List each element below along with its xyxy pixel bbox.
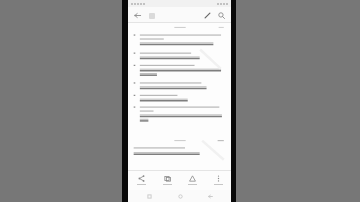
button[interactable]: Gallery — [155, 170, 179, 190]
button[interactable]: Open in Acrobat — [180, 170, 204, 190]
button[interactable]: Edit — [201, 9, 214, 22]
button[interactable]: Home — [170, 190, 190, 202]
button[interactable]: Share — [129, 170, 153, 190]
button[interactable]: More options — [206, 170, 230, 190]
button[interactable]: Recent apps — [139, 190, 159, 202]
button[interactable]: Page thumbnails — [145, 9, 158, 22]
button[interactable]: Search — [215, 9, 228, 22]
button[interactable]: Back — [200, 190, 220, 202]
button[interactable]: Back — [131, 9, 144, 22]
